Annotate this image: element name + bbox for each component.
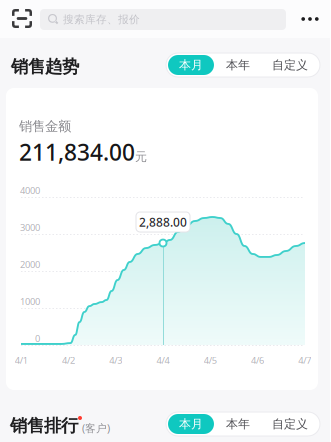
button[interactable]: More — [294, 0, 326, 38]
button[interactable]: 本月 — [168, 414, 214, 434]
staticText: (客户) — [82, 421, 110, 435]
staticText: 销售金额 — [19, 118, 71, 134]
staticText: 2000 — [20, 258, 40, 271]
button[interactable]: 自定义 — [262, 55, 318, 75]
staticText: 本年 — [226, 417, 250, 431]
button[interactable]: 自定义 — [262, 414, 318, 434]
staticText: 4/5 — [204, 354, 217, 366]
button[interactable]: 本年 — [214, 55, 262, 75]
staticText: 2,888.00 — [139, 214, 187, 230]
button[interactable]: 本年 — [214, 414, 262, 434]
staticText: 元 — [135, 149, 147, 164]
staticText: 4/1 — [15, 354, 28, 366]
staticText: 自定义 — [272, 417, 308, 431]
button[interactable]: Scan — [6, 0, 38, 37]
staticText: 1000 — [20, 295, 40, 308]
staticText: 销售趋势 — [11, 56, 79, 77]
staticText: 4/4 — [156, 354, 169, 366]
staticText: 4/2 — [62, 354, 75, 366]
staticText: 销售排行 — [10, 415, 78, 436]
staticText: 自定义 — [272, 58, 308, 72]
staticText: 本年 — [226, 58, 250, 72]
staticText: 本月 — [179, 58, 203, 72]
staticText: 3000 — [20, 221, 40, 234]
staticText: 4/7 — [298, 354, 311, 366]
staticText: 搜索库存、报价 — [63, 13, 140, 26]
staticText: 4/3 — [109, 354, 122, 366]
staticText: 4000 — [20, 184, 40, 197]
staticText: 本月 — [179, 417, 203, 431]
staticText: 4/6 — [251, 354, 264, 366]
staticText: 0 — [35, 332, 40, 345]
button[interactable]: 本月 — [168, 55, 214, 75]
staticText: 211,834.00 — [19, 137, 135, 167]
